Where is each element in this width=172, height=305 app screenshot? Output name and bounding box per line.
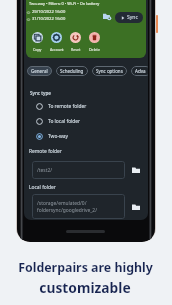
other: Browse folder [132, 203, 140, 211]
staticText: To remote folder [48, 103, 87, 110]
staticText: Sync type [30, 90, 51, 96]
button[interactable]: Sync [115, 12, 143, 23]
button[interactable]: General [27, 66, 52, 76]
other: Browse folder [132, 166, 140, 174]
staticText: Remote folder [29, 148, 62, 155]
staticText: Two-way [48, 133, 69, 140]
button[interactable]: Advanced [131, 66, 148, 76]
staticText: Folderpairs are highly [18, 259, 153, 276]
other: Sync status [103, 12, 111, 20]
button[interactable]: Delete [86, 32, 103, 52]
staticText: Scheduling [60, 68, 84, 74]
button[interactable]: Sync options [92, 66, 127, 76]
button[interactable]: Two-way [36, 133, 69, 140]
staticText: 29/10/2022 16:00 [32, 9, 66, 15]
staticText: Sync [127, 14, 138, 21]
staticText: Advanced [135, 68, 147, 74]
staticText: customizable [39, 278, 131, 297]
staticText: foldersync/googledrive_2/ [37, 207, 97, 214]
button[interactable]: To remote folder [36, 103, 87, 110]
button[interactable]: To local folder [36, 118, 81, 125]
staticText: 31/10/2022 16:00 [32, 16, 66, 22]
staticText: /test2/ [37, 167, 53, 174]
button[interactable]: /test2/ [32, 161, 125, 179]
staticText: Local folder [29, 184, 56, 191]
staticText: Copy [33, 47, 42, 52]
staticText: Reset [71, 47, 81, 52]
staticText: Delete [89, 47, 100, 52]
button[interactable]: /storage/emulated/0/ [32, 194, 125, 219]
staticText: Sync options [96, 68, 123, 74]
staticText: To local folder [48, 118, 81, 125]
button[interactable]: Reset [67, 32, 84, 52]
button[interactable]: Copy [29, 32, 46, 52]
button[interactable]: Account [48, 32, 65, 52]
staticText: Two-way • Filters: 0 • Wi-Fi • On batter… [29, 1, 100, 6]
staticText: Account [50, 47, 64, 52]
staticText: /storage/emulated/0/ [37, 200, 87, 207]
button[interactable]: Scheduling [56, 66, 88, 76]
staticText: General [31, 68, 48, 74]
